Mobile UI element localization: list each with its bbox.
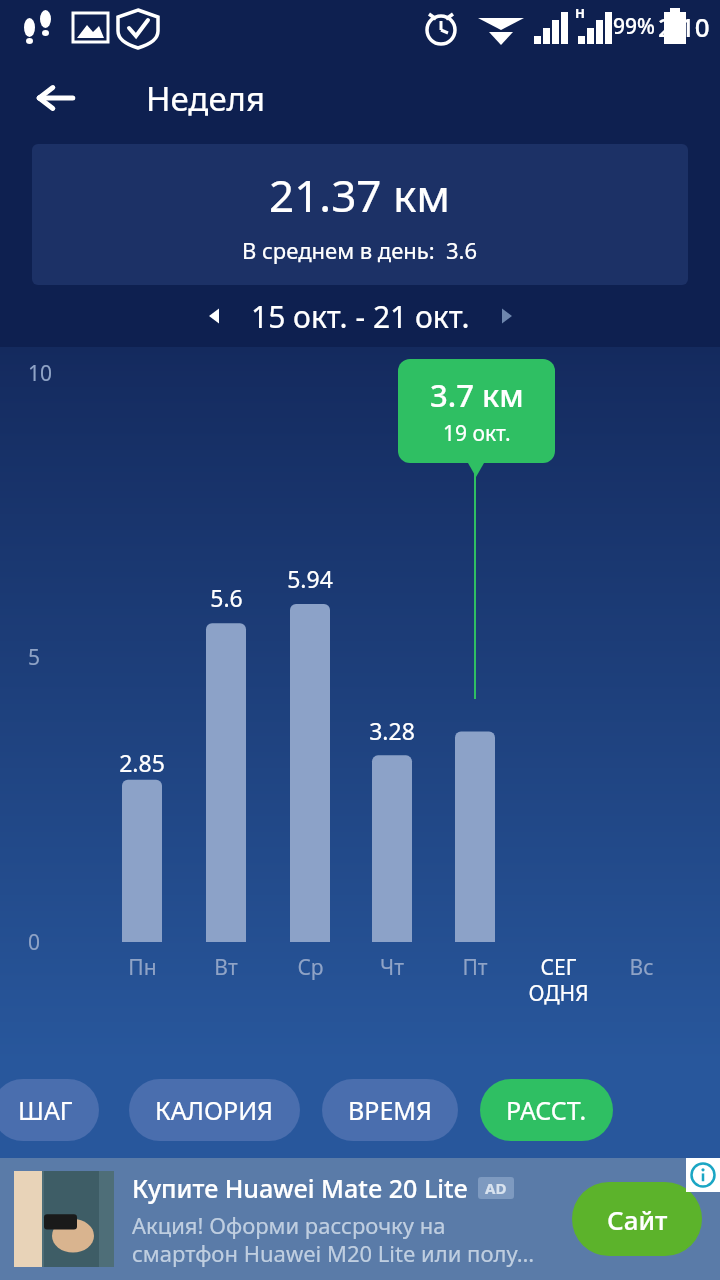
staticText: 0 [28, 928, 41, 957]
button[interactable]: Previous week [191, 293, 237, 339]
button[interactable]: Next week [484, 293, 530, 339]
staticText: Неделя [146, 76, 265, 121]
staticText: 99% [613, 12, 655, 41]
staticText: Пт [462, 953, 488, 982]
staticText: Чт [380, 953, 404, 982]
staticText: РАССТ. [506, 1093, 587, 1127]
staticText: СЕГ ОДНЯ [528, 953, 589, 1007]
staticText: ВРЕМЯ [348, 1093, 432, 1127]
button[interactable]: Вт [176, 953, 276, 982]
button[interactable]: Пт [425, 953, 525, 982]
button[interactable]: Ad info [686, 1158, 720, 1192]
button[interactable]: 21.37 км [32, 144, 688, 285]
button[interactable]: ШАГ [0, 1079, 99, 1141]
staticText: 3.28 [369, 715, 415, 746]
staticText: H [575, 4, 585, 22]
staticText: 10 [28, 359, 53, 388]
button[interactable]: Вс [591, 953, 691, 982]
button[interactable]: Купите Huawei Mate 20 Lite [0, 1158, 720, 1280]
button[interactable]: КАЛОРИЯ [129, 1079, 300, 1141]
button[interactable]: Ср [260, 953, 360, 982]
button[interactable]: Пн [92, 953, 192, 982]
staticText: 3.7 км [430, 374, 524, 416]
button[interactable]: Чт [342, 953, 442, 982]
staticText: 5.94 [287, 563, 333, 594]
button[interactable]: РАССТ. [480, 1079, 613, 1141]
staticText: 2:10 [658, 9, 710, 44]
staticText: Вс [629, 953, 654, 982]
button[interactable]: Back [20, 62, 92, 134]
staticText: В среднем в день: 3.6 [242, 235, 478, 265]
button[interactable]: ВРЕМЯ [322, 1079, 458, 1141]
staticText: Акция! Оформи рассрочку на смартфон Huaw… [132, 1210, 535, 1268]
staticText: 5.6 [210, 582, 243, 613]
staticText: Ср [297, 953, 324, 982]
staticText: 19 окт. [443, 419, 511, 448]
staticText: 2.85 [119, 747, 165, 778]
staticText: Купите Huawei Mate 20 Lite [132, 1171, 468, 1205]
staticText: Сайт [607, 1202, 668, 1237]
staticText: 21.37 км [269, 165, 451, 225]
button[interactable]: СЕГ ОДНЯ [508, 953, 608, 1007]
staticText: AD [485, 1178, 507, 1198]
button[interactable]: Сайт [572, 1182, 702, 1256]
staticText: ШАГ [18, 1093, 73, 1127]
staticText: 5 [28, 643, 41, 672]
staticText: 15 окт. - 21 окт. [251, 296, 470, 337]
button[interactable]: 3.7 км [398, 359, 555, 463]
staticText: Вт [214, 953, 238, 982]
staticText: Пн [128, 953, 157, 982]
staticText: КАЛОРИЯ [155, 1093, 274, 1127]
